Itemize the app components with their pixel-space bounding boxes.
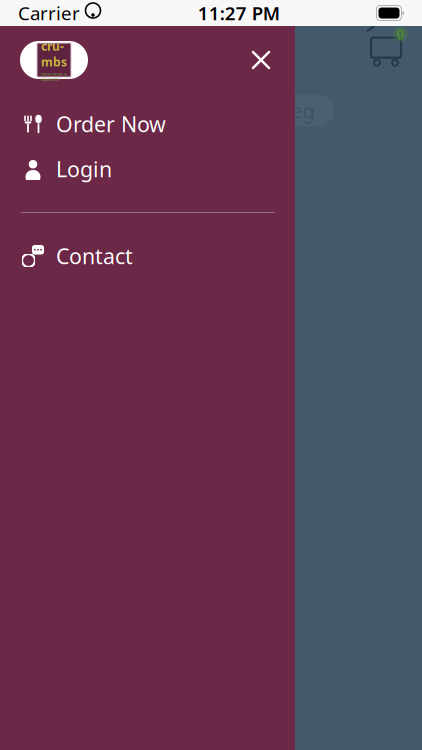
staticText: Meat: [101, 97, 148, 124]
staticText: Login: [56, 155, 112, 183]
button[interactable]: Login: [0, 147, 295, 191]
staticText: 11:27 PM: [198, 1, 280, 25]
staticText: 0: [396, 25, 404, 43]
button[interactable]: Close menu: [239, 38, 283, 82]
staticText: Order Now: [56, 110, 166, 138]
staticText: Veg: [279, 97, 314, 124]
button[interactable]: Order Now: [0, 102, 295, 146]
staticText: Carrier: [18, 1, 80, 25]
button[interactable]: Crumbs home: [20, 41, 88, 79]
button[interactable]: Contact: [0, 234, 295, 278]
staticText: crumbs: [41, 38, 67, 70]
staticText: Contact: [56, 242, 133, 270]
staticText: FRESH MEAT & SEAFOOD: [41, 71, 67, 82]
